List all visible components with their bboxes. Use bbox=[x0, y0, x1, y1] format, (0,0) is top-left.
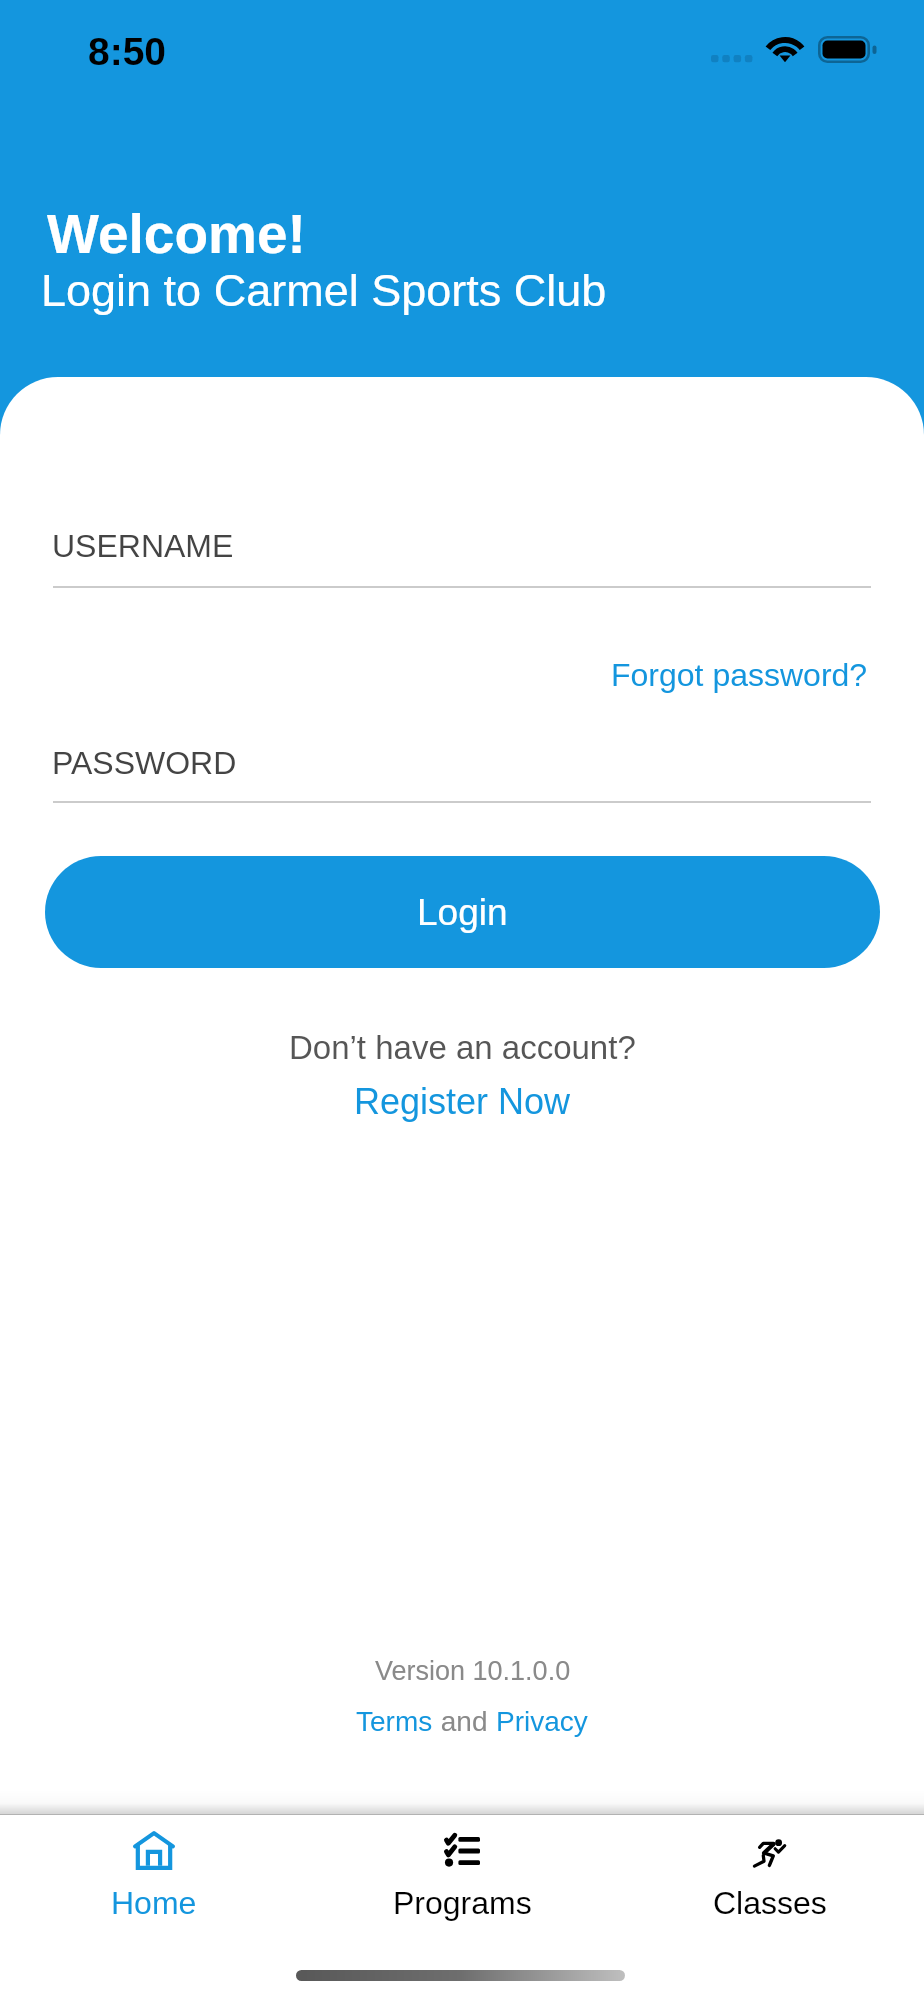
button[interactable]: Home bbox=[0, 1822, 308, 1932]
staticText: Classes bbox=[713, 1885, 827, 1921]
staticText: PASSWORD bbox=[52, 745, 237, 781]
other: Battery bbox=[818, 36, 877, 63]
button[interactable]: Privacy bbox=[496, 1706, 588, 1737]
staticText: Login to Carmel Sports Club bbox=[41, 265, 607, 315]
staticText: Home bbox=[111, 1885, 197, 1921]
staticText: Login bbox=[417, 892, 508, 933]
button[interactable]: Register Now bbox=[354, 1081, 571, 1121]
staticText: Version 10.1.0.0 bbox=[375, 1656, 571, 1686]
button[interactable]: Forgot password? bbox=[611, 657, 868, 693]
staticText: 8:50 bbox=[88, 30, 167, 74]
other: Wi-Fi bbox=[767, 36, 803, 64]
button[interactable]: Programs bbox=[308, 1822, 616, 1932]
staticText: Welcome! bbox=[47, 203, 306, 264]
staticText: Programs bbox=[393, 1885, 532, 1921]
staticText: and bbox=[433, 1706, 496, 1737]
button[interactable]: Login bbox=[45, 856, 880, 968]
button[interactable]: Terms bbox=[356, 1706, 433, 1737]
staticText: USERNAME bbox=[52, 528, 234, 564]
button[interactable]: Classes bbox=[616, 1822, 924, 1932]
other: Cellular signal bbox=[711, 55, 754, 63]
staticText: Don’t have an account? bbox=[289, 1029, 636, 1066]
